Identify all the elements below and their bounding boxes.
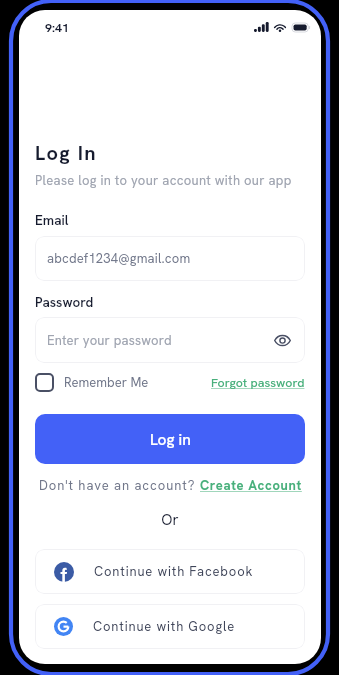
staticText: abcdef1234@gmail.com [47, 250, 191, 267]
button[interactable]: Forgot password [211, 375, 305, 391]
button[interactable]: Enter your password [35, 317, 305, 363]
staticText: Password [35, 293, 94, 311]
staticText: Email [35, 211, 69, 229]
button[interactable]: abcdef1234@gmail.com [35, 236, 305, 281]
staticText: Don't have an account? [39, 477, 200, 494]
staticText: Enter your password [47, 332, 172, 349]
button[interactable]: Show password [271, 329, 293, 351]
staticText: Continue with Google [93, 618, 236, 635]
button[interactable]: Log in [35, 414, 305, 464]
staticText: Please log in to your account with our a… [35, 172, 292, 189]
staticText: Remember Me [64, 374, 149, 391]
button[interactable]: Continue with Facebook [35, 549, 305, 594]
button[interactable]: Create Account [200, 477, 302, 494]
staticText: Or [35, 510, 305, 530]
button[interactable]: Remember Me [35, 373, 149, 392]
staticText: Continue with Facebook [94, 563, 254, 580]
staticText: 9:41 [45, 19, 70, 35]
staticText: Log in [150, 429, 191, 449]
staticText: Log In [35, 140, 98, 166]
button[interactable]: Continue with Google [35, 604, 305, 649]
